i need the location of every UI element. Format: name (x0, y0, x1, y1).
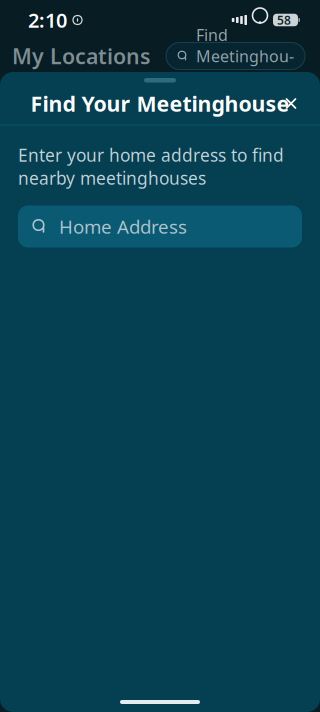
staticText: Home Address (59, 214, 187, 239)
button[interactable]: Close (274, 86, 308, 120)
button[interactable]: Home Address (18, 205, 302, 247)
staticText: 2:10 (28, 7, 67, 33)
staticText: Enter your home address to find nearby m… (18, 143, 284, 189)
staticText: My Locations (12, 42, 151, 70)
staticText: Find Meetinghouses (196, 24, 294, 88)
staticText: Find Your Meetinghouse (30, 89, 289, 118)
button[interactable]: Find Meetinghouses (166, 42, 305, 69)
staticText: 58 (277, 12, 291, 28)
